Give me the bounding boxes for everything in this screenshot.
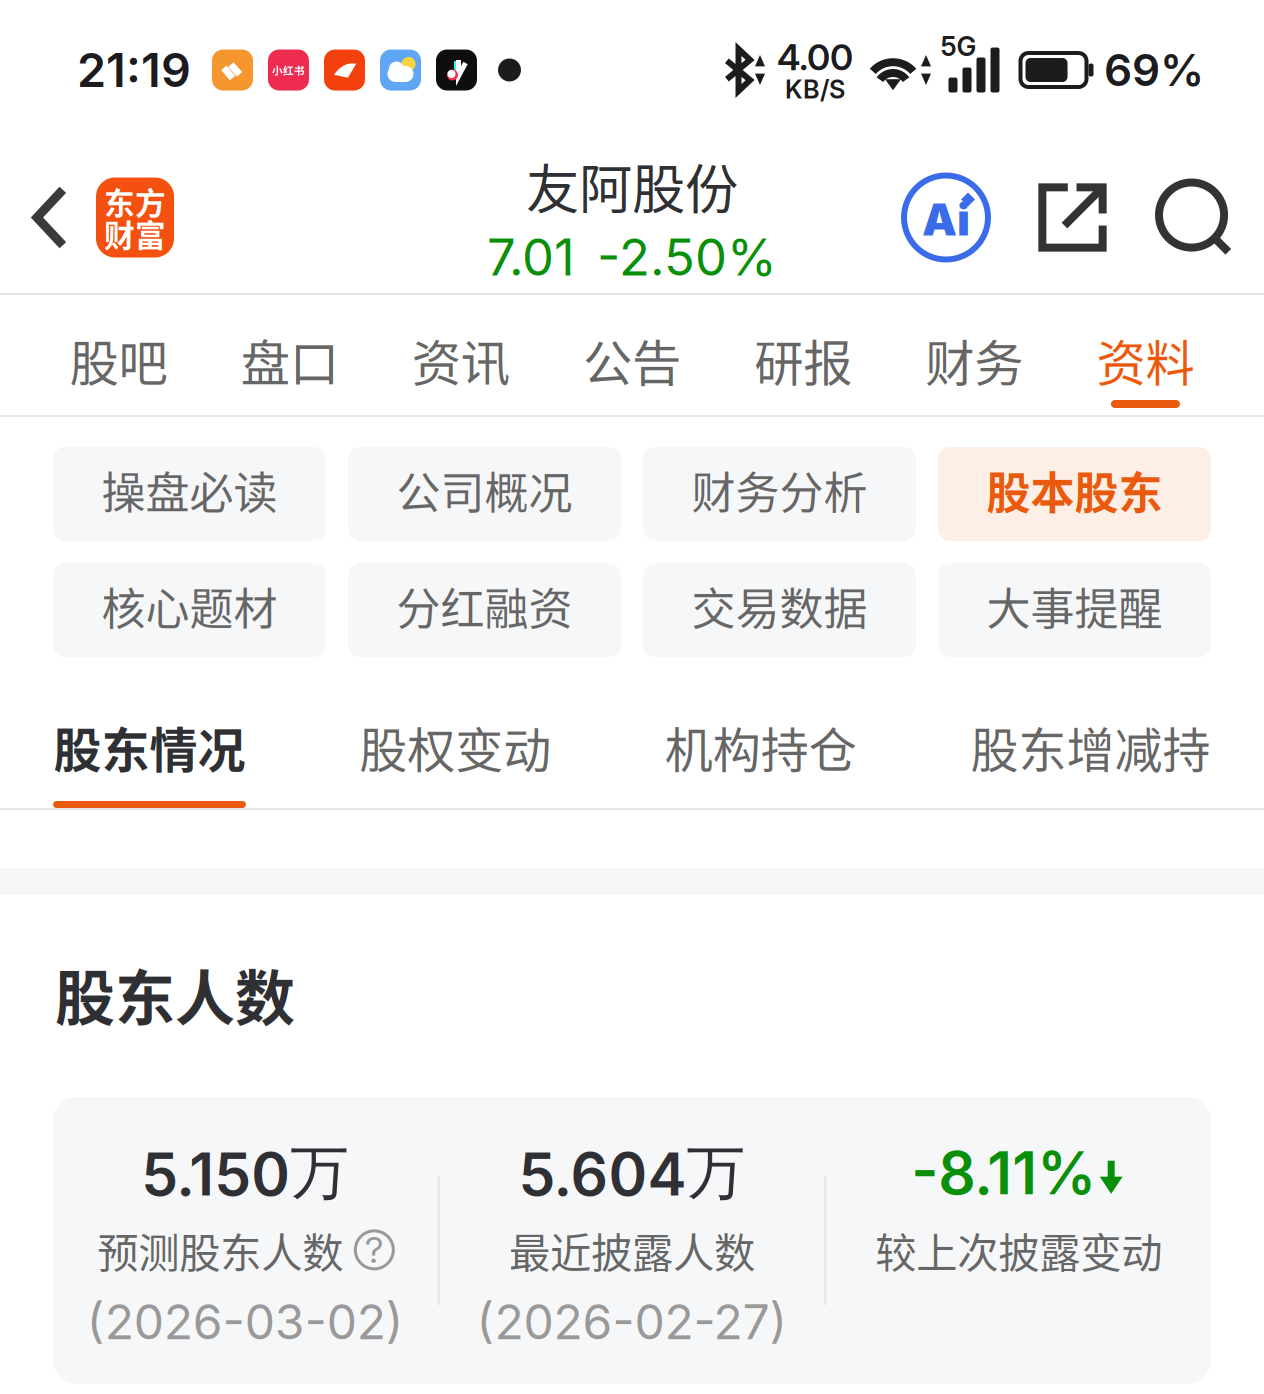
staticText: 友阿股份: [526, 147, 738, 224]
staticText: 股东增减持: [970, 712, 1210, 781]
button[interactable]: 公司概况: [348, 447, 621, 541]
staticText: 股东人数: [55, 951, 295, 1038]
button[interactable]: 资讯: [375, 295, 546, 417]
staticText: 机构持仓: [665, 712, 857, 781]
button[interactable]: 资料: [1060, 295, 1231, 417]
staticText: 小红书: [272, 62, 305, 78]
staticText: 预测股东人数: [97, 1220, 343, 1280]
button[interactable]: 机构持仓: [664, 679, 857, 810]
button[interactable]: 股本股东: [938, 447, 1211, 541]
staticText: 69%: [1104, 43, 1204, 97]
staticText: 5.150万: [141, 1136, 349, 1210]
staticText: 盘口: [241, 324, 339, 395]
staticText: -2.50%: [597, 226, 777, 288]
staticText: 财富: [104, 211, 166, 256]
staticText: 股吧: [70, 324, 168, 395]
staticText: 股东情况: [53, 712, 245, 781]
staticText: 大事提醒: [986, 574, 1162, 638]
button[interactable]: East Money: [96, 177, 174, 257]
staticText: 财务: [925, 324, 1023, 395]
button[interactable]: 股权变动: [359, 679, 552, 810]
staticText: 股权变动: [359, 712, 551, 781]
staticText: 财务分析: [691, 458, 867, 522]
staticText: 5G: [940, 30, 976, 62]
staticText: 分红融资: [396, 574, 572, 638]
staticText: -8.11%: [911, 1137, 1096, 1208]
staticText: 交易数据: [691, 574, 867, 638]
staticText: (2026-03-02): [87, 1293, 404, 1351]
staticText: Ai: [922, 193, 970, 246]
button[interactable]: 交易数据: [643, 563, 916, 657]
staticText: 较上次披露变动: [875, 1220, 1162, 1280]
staticText: 5.604万: [518, 1136, 745, 1210]
button[interactable]: 股吧: [33, 295, 204, 417]
staticText: 资料: [1096, 324, 1194, 395]
button[interactable]: Share: [1039, 184, 1106, 251]
staticText: 公司概况: [396, 458, 572, 522]
staticText: 7.01: [487, 226, 575, 288]
staticText: 核心题材: [101, 574, 277, 638]
staticText: 股本股东: [986, 458, 1162, 522]
button[interactable]: 财务: [889, 295, 1060, 417]
staticText: 公告: [583, 324, 681, 395]
staticText: 操盘必读: [101, 458, 277, 522]
staticText: 资讯: [412, 324, 510, 395]
button[interactable]: 分红融资: [348, 563, 621, 657]
button[interactable]: 股东增减持: [970, 679, 1211, 810]
button[interactable]: 盘口: [204, 295, 375, 417]
button[interactable]: 核心题材: [53, 563, 326, 657]
button[interactable]: AI: [904, 175, 988, 259]
button[interactable]: Search: [1159, 182, 1229, 252]
staticText: KB/S: [785, 74, 845, 105]
button[interactable]: 股东情况: [53, 679, 246, 810]
button[interactable]: 财务分析: [643, 447, 916, 541]
button[interactable]: 研报: [718, 295, 889, 417]
staticText: 东方: [104, 179, 166, 224]
staticText: 21:19: [77, 42, 191, 98]
staticText: 最近披露人数: [509, 1220, 755, 1280]
staticText: 研报: [754, 324, 852, 395]
staticText: ?: [365, 1228, 384, 1272]
staticText: 4.00: [777, 35, 853, 79]
staticText: (2026-02-27): [476, 1293, 787, 1351]
button[interactable]: Back: [0, 152, 96, 282]
button[interactable]: 大事提醒: [938, 563, 1211, 657]
button[interactable]: 公告: [546, 295, 717, 417]
button[interactable]: 操盘必读: [53, 447, 326, 541]
